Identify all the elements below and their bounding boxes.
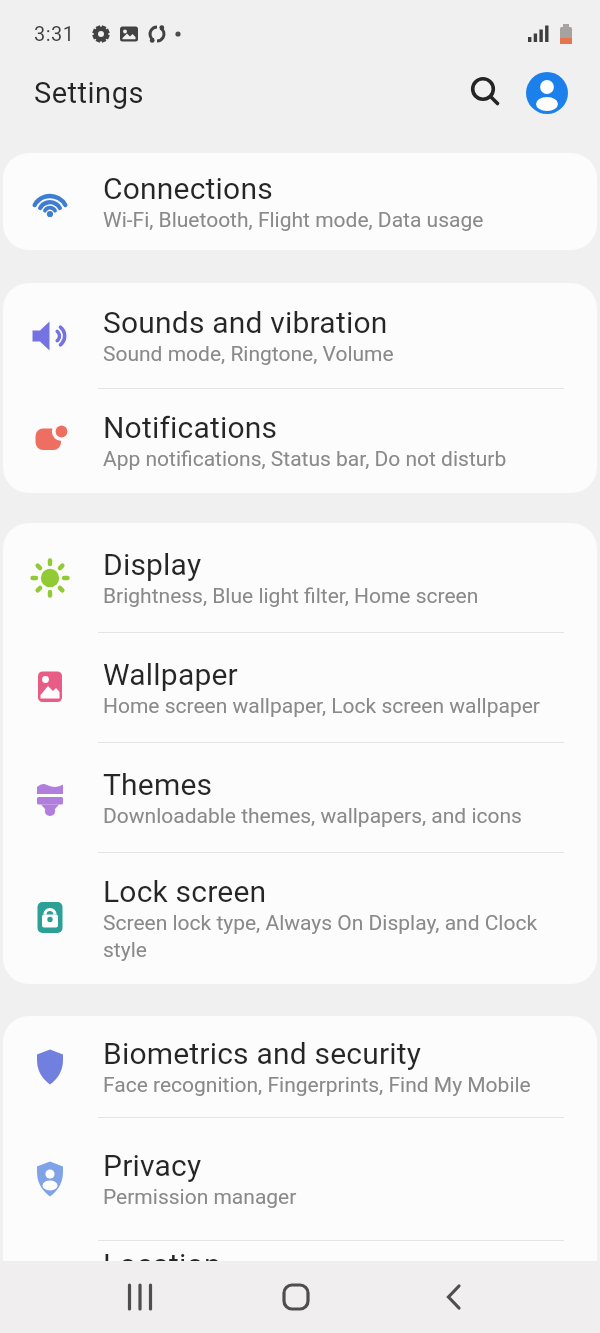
button[interactable]: Connections [3, 153, 597, 250]
staticText: Sound mode, Ringtone, Volume [103, 342, 394, 367]
staticText: Location [103, 1247, 221, 1261]
button[interactable]: Themes [3, 743, 597, 852]
staticText: Screen lock type, Always On Display, and… [103, 911, 565, 963]
staticText: Face recognition, Fingerprints, Find My … [103, 1073, 531, 1098]
staticText: Brightness, Blue light filter, Home scre… [103, 584, 479, 609]
button[interactable] [526, 72, 568, 114]
staticText: Permission manager [103, 1185, 297, 1210]
button[interactable]: Sounds and vibration [3, 283, 597, 388]
staticText: Wi-Fi, Bluetooth, Flight mode, Data usag… [103, 208, 484, 233]
button[interactable]: Privacy [3, 1118, 597, 1240]
staticText: Wallpaper [103, 657, 238, 692]
staticText: Privacy [103, 1148, 202, 1183]
staticText: Themes [103, 767, 213, 802]
button[interactable]: Location [3, 1247, 597, 1261]
button[interactable] [440, 1282, 470, 1312]
staticText: 3:31 [34, 22, 75, 45]
staticText: Settings [34, 76, 144, 110]
button[interactable]: Notifications [3, 389, 597, 493]
button[interactable] [464, 71, 508, 115]
staticText: App notifications, Status bar, Do not di… [103, 447, 507, 472]
staticText: Notifications [103, 410, 278, 445]
staticText: Connections [103, 171, 273, 206]
staticText: Sounds and vibration [103, 305, 388, 340]
staticText: Display [103, 547, 202, 582]
staticText: Lock screen [103, 874, 267, 909]
staticText: Home screen wallpaper, Lock screen wallp… [103, 694, 540, 719]
staticText: Biometrics and security [103, 1036, 422, 1071]
button[interactable]: Lock screen [3, 853, 597, 984]
button[interactable]: Display [3, 523, 597, 632]
staticText: Downloadable themes, wallpapers, and ico… [103, 804, 522, 829]
button[interactable]: Wallpaper [3, 633, 597, 742]
button[interactable]: Biometrics and security [3, 1016, 597, 1117]
button[interactable] [125, 1282, 155, 1312]
button[interactable] [281, 1282, 311, 1312]
